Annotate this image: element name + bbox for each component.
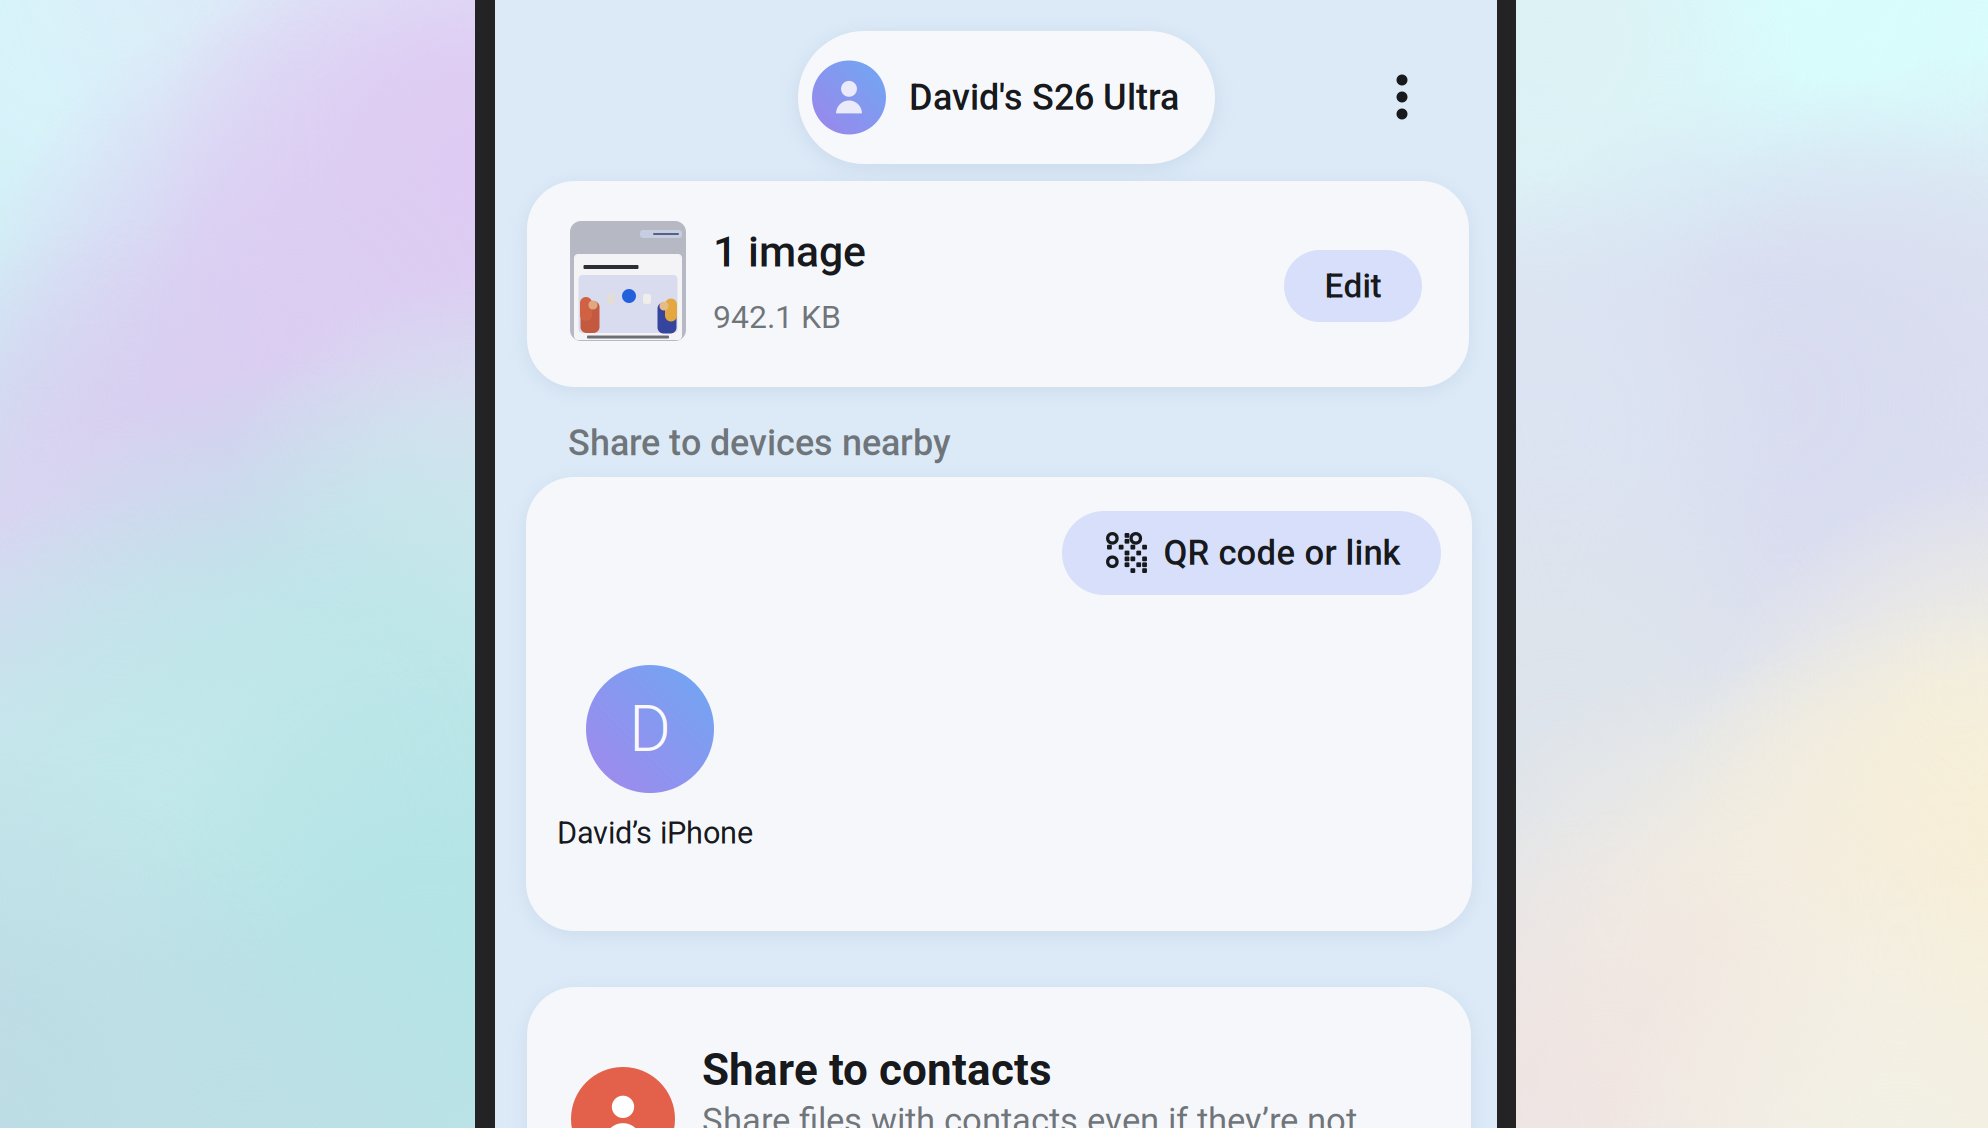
button[interactable]: D: [557, 665, 783, 851]
staticText: David's S26 Ultra: [909, 76, 1179, 119]
button[interactable]: More options: [1370, 65, 1434, 129]
staticText: Share to devices nearby: [568, 422, 951, 464]
staticText: David’s iPhone: [557, 815, 753, 851]
staticText: QR code or link: [1163, 533, 1400, 573]
staticText: Share files with contacts even if they’r…: [702, 1101, 1357, 1128]
staticText: 1 image: [713, 227, 866, 277]
button[interactable]: David's S26 Ultra: [798, 31, 1215, 164]
button[interactable]: Edit: [1284, 250, 1422, 322]
button[interactable]: Share to contacts: [527, 987, 1471, 1128]
staticText: Edit: [1324, 266, 1381, 306]
button[interactable]: QR code or link: [1062, 511, 1441, 595]
staticText: Share to contacts: [702, 1044, 1052, 1096]
staticText: D: [629, 691, 671, 766]
staticText: 942.1 KB: [713, 298, 841, 336]
